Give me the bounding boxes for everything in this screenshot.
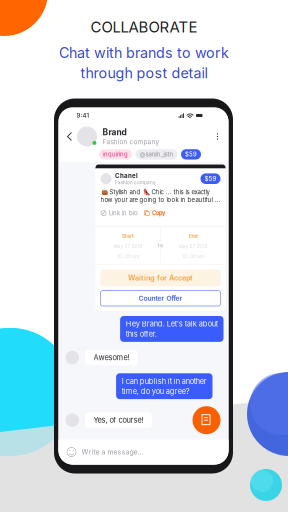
button[interactable]: Back xyxy=(62,125,77,147)
staticText: May 27 2019 xyxy=(178,243,207,249)
staticText: COLLABORATE xyxy=(90,18,197,36)
staticText: 10 : 00 am xyxy=(182,254,204,259)
button[interactable]: New message xyxy=(192,406,220,434)
staticText: this offer. xyxy=(126,329,157,338)
staticText: I can publish it in another xyxy=(122,377,207,386)
staticText: Fashion company xyxy=(102,138,159,146)
staticText: $59 xyxy=(185,151,197,158)
staticText: 👜 Stylish and 👠 Chic ... this is exactly xyxy=(100,188,209,196)
staticText: Chat with brands to work xyxy=(59,44,229,61)
staticText: Fashion company xyxy=(115,180,156,185)
staticText: Hey Brand. Let's talk about xyxy=(126,319,218,328)
staticText: $59 xyxy=(204,175,216,182)
staticText: 9:41 xyxy=(76,112,89,119)
staticText: @sarah_jstn xyxy=(139,151,173,158)
button[interactable]: Waiting for Accept xyxy=(100,269,220,286)
staticText: Chanel xyxy=(115,172,138,179)
staticText: May 27 2019 xyxy=(113,243,142,249)
staticText: how your are going to look in beautiful … xyxy=(100,196,220,203)
staticText: Awesome! xyxy=(93,353,129,362)
staticText: Counter Offer xyxy=(138,294,182,302)
staticText: Brand xyxy=(102,127,126,137)
staticText: Yes, of course! xyxy=(93,416,143,425)
staticText: End xyxy=(188,233,197,239)
staticText: Link in bio xyxy=(109,209,138,217)
staticText: Start xyxy=(122,233,134,239)
staticText: 10 : 00 am xyxy=(117,254,139,259)
staticText: Copy xyxy=(152,210,165,216)
staticText: time, do you agree? xyxy=(122,387,190,396)
staticText: to xyxy=(158,242,163,248)
staticText: Waiting for Accept xyxy=(128,273,193,282)
button[interactable]: Counter Offer xyxy=(100,291,220,306)
staticText: inquiring xyxy=(103,151,128,158)
staticText: through post detail xyxy=(80,64,207,82)
button[interactable]: More options xyxy=(212,125,222,147)
staticText: Write a message... xyxy=(81,448,143,456)
